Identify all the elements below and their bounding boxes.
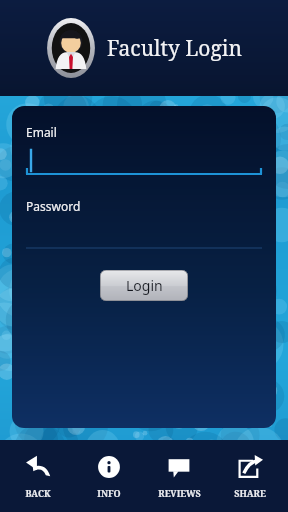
staticText: Email [26,124,57,140]
button[interactable]: BACK [5,440,71,512]
staticText: INFO [97,487,121,499]
button[interactable]: SHARE [217,440,283,512]
staticText: REVIEWS [158,487,201,499]
staticText: BACK [25,487,51,499]
button[interactable]: Login [100,270,188,301]
button[interactable] [26,146,262,176]
staticText: SHARE [234,487,266,499]
staticText: Faculty Login [107,34,243,63]
staticText: Login [126,276,163,295]
button[interactable]: REVIEWS [146,440,212,512]
button[interactable]: INFO [76,440,142,512]
button[interactable] [26,220,262,250]
staticText: Password [26,198,81,214]
